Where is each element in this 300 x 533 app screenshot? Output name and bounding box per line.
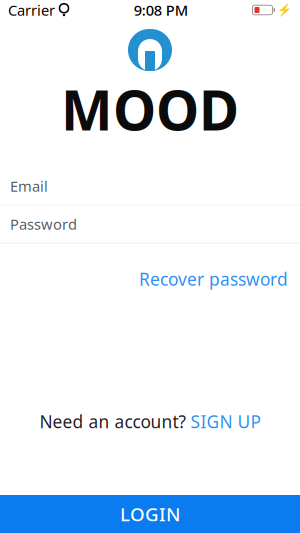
staticText: SIGN UP xyxy=(190,410,260,433)
button[interactable]: LOGIN xyxy=(0,495,300,533)
staticText: Need an account? xyxy=(39,410,186,433)
staticText: Carrier xyxy=(8,0,55,20)
staticText: Password xyxy=(10,214,77,234)
button[interactable]: Recover password xyxy=(127,260,300,299)
staticText: ⚡ xyxy=(277,3,292,17)
staticText: LOGIN xyxy=(120,502,180,526)
staticText: Recover password xyxy=(139,268,288,291)
staticText: 9:08 PM xyxy=(134,0,188,20)
staticText: Email xyxy=(10,176,48,196)
button[interactable]: Need an account? xyxy=(29,402,270,441)
staticText: MOOD xyxy=(61,73,239,146)
